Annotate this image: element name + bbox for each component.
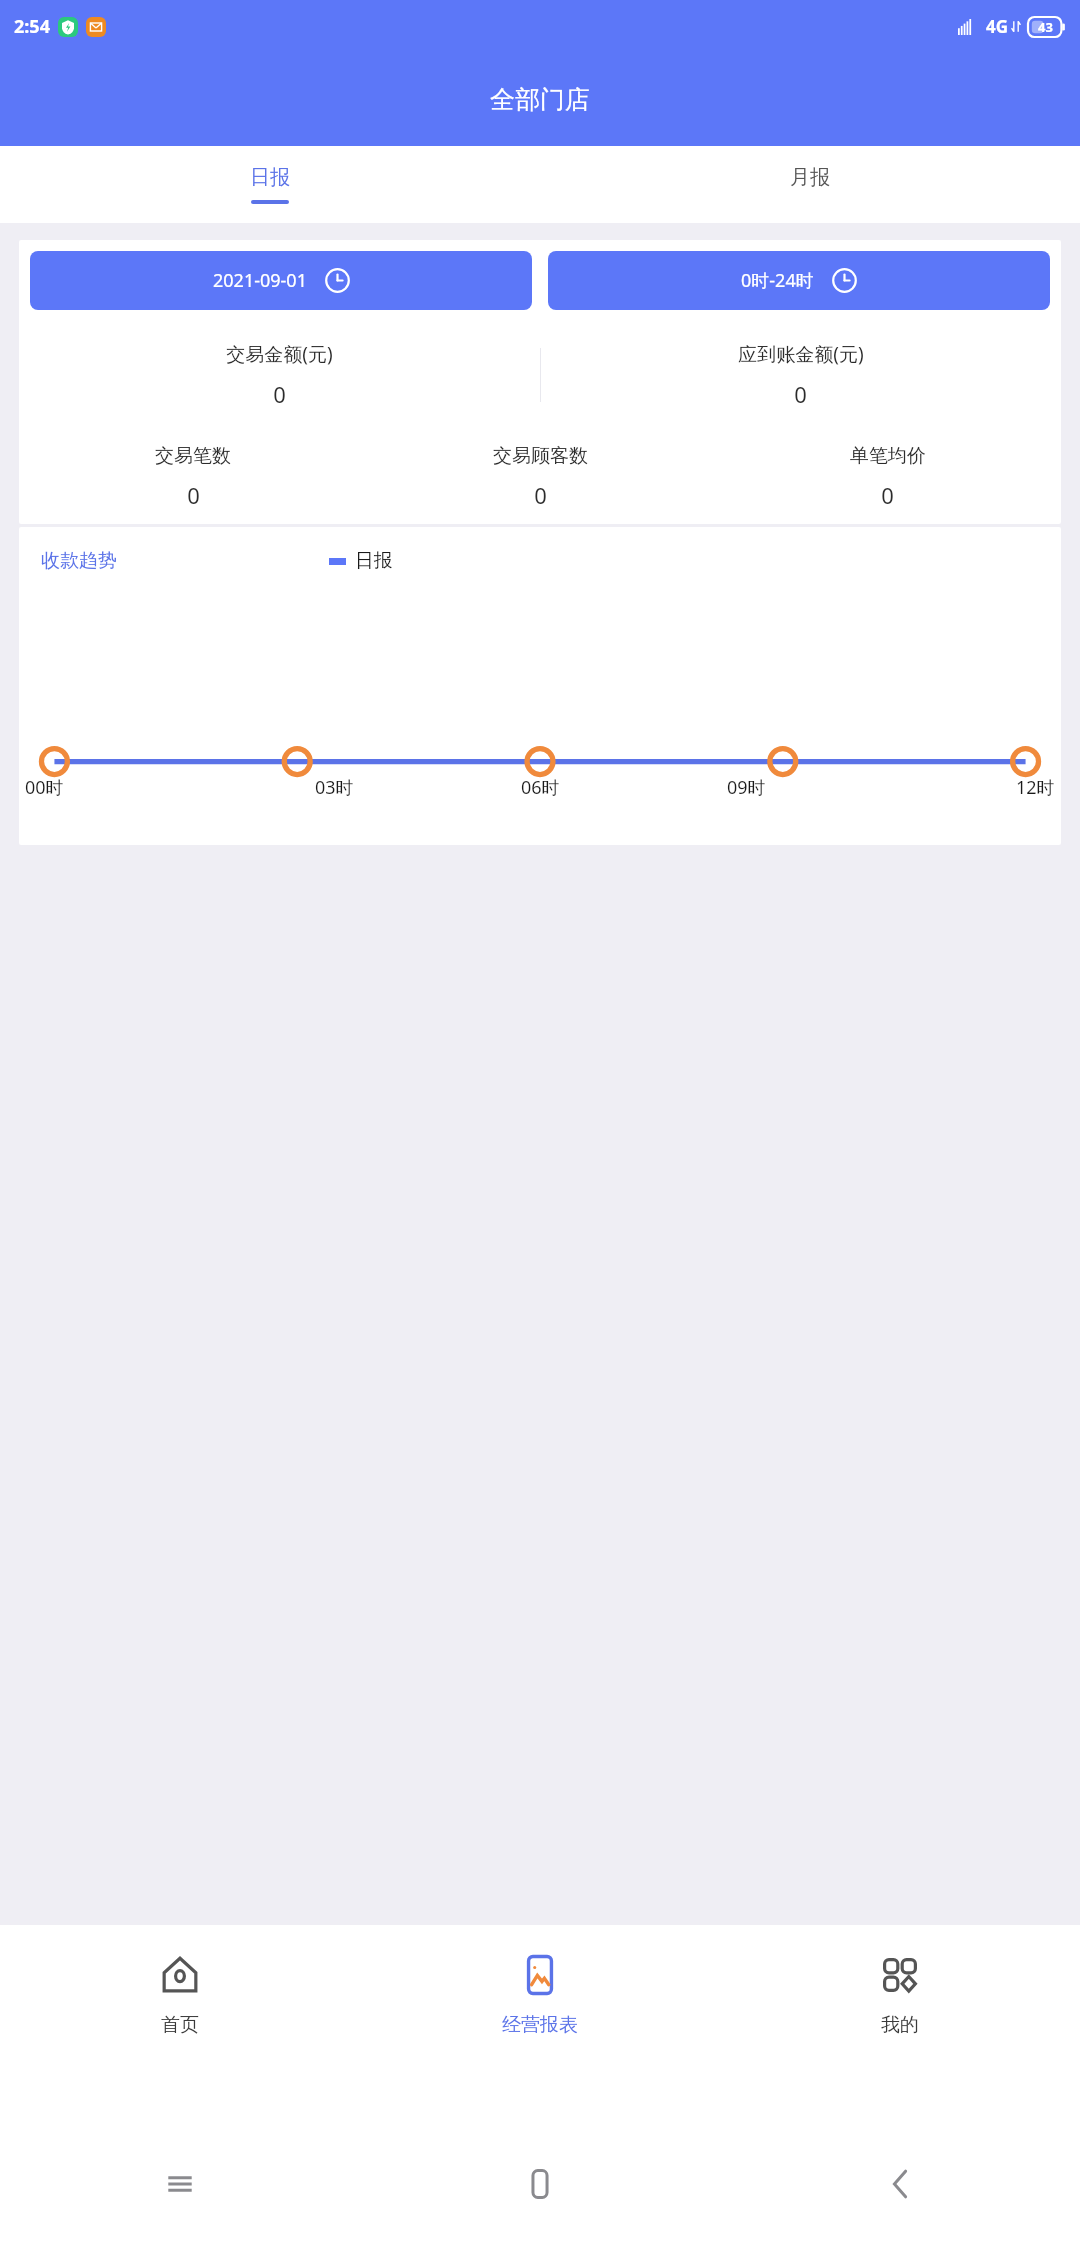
staticText: 43 bbox=[1038, 18, 1053, 36]
button[interactable]: 月报 bbox=[540, 146, 1080, 223]
staticText: 全部门店 bbox=[490, 84, 590, 115]
button[interactable]: Recents bbox=[0, 2120, 360, 2248]
button[interactable]: 我的 bbox=[720, 1925, 1080, 2120]
staticText: 日报 bbox=[250, 165, 290, 190]
button[interactable]: 日报 bbox=[0, 146, 540, 223]
staticText: 经营报表 bbox=[502, 2013, 578, 2037]
staticText: 交易金额(元) bbox=[226, 341, 333, 367]
staticText: 月报 bbox=[790, 165, 830, 190]
staticText: 0 bbox=[273, 379, 286, 409]
staticText: 首页 bbox=[161, 2013, 199, 2037]
button[interactable]: 0时-24时 bbox=[548, 251, 1050, 310]
staticText: 0 bbox=[534, 480, 547, 510]
staticText: 0 bbox=[187, 480, 200, 510]
other: Select time bbox=[832, 268, 857, 293]
button[interactable]: Back bbox=[720, 2120, 1080, 2248]
staticText: 0 bbox=[794, 379, 807, 409]
staticText: 06时 bbox=[521, 775, 560, 800]
staticText: 单笔均价 bbox=[850, 444, 926, 468]
staticText: 0时-24时 bbox=[741, 268, 814, 293]
staticText: 交易顾客数 bbox=[493, 444, 588, 468]
staticText: 我的 bbox=[881, 2013, 919, 2037]
staticText: 03时 bbox=[315, 775, 354, 800]
staticText: 2021-09-01 bbox=[213, 268, 307, 293]
button[interactable]: Home bbox=[360, 2120, 720, 2248]
staticText: 09时 bbox=[727, 775, 766, 800]
staticText: 0 bbox=[881, 480, 894, 510]
staticText: 收款趋势 bbox=[41, 549, 117, 573]
staticText: 12时 bbox=[1016, 775, 1055, 800]
staticText: 00时 bbox=[25, 775, 64, 800]
button[interactable]: 经营报表 bbox=[360, 1925, 720, 2120]
staticText: 4G bbox=[986, 15, 1009, 38]
staticText: 日报 bbox=[355, 549, 393, 573]
staticText: 交易笔数 bbox=[155, 444, 231, 468]
other: Select time bbox=[325, 268, 350, 293]
button[interactable]: 首页 bbox=[0, 1925, 360, 2120]
staticText: 应到账金额(元) bbox=[738, 341, 864, 367]
staticText: 2:54 bbox=[14, 14, 50, 39]
button[interactable]: 2021-09-01 bbox=[30, 251, 532, 310]
